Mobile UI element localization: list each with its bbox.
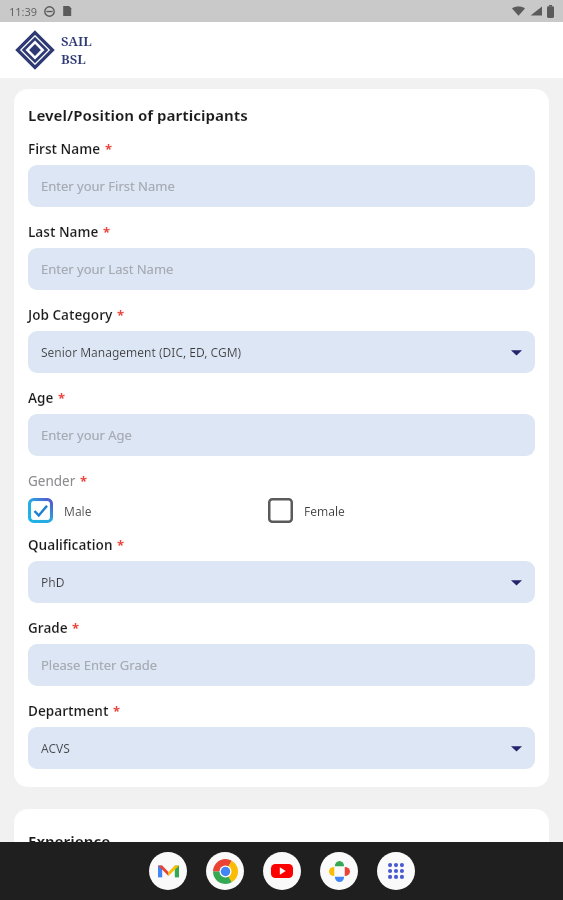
staticText: Gender — [28, 472, 76, 490]
staticText: PhD — [41, 574, 65, 590]
staticText: * — [103, 223, 111, 241]
staticText: Department — [28, 702, 109, 720]
button[interactable]: Please Enter Grade — [28, 644, 535, 686]
staticText: Please Enter Grade — [41, 656, 158, 674]
button[interactable]: YouTube — [263, 852, 301, 890]
staticText: * — [117, 536, 125, 554]
button[interactable]: Male selected — [28, 498, 100, 523]
button[interactable]: Senior Management (DIC, ED, CGM) — [28, 331, 535, 373]
staticText: ACVS — [41, 740, 70, 756]
staticText: * — [80, 472, 88, 490]
staticText: Level/Position of participants — [28, 105, 248, 125]
button[interactable]: ACVS — [28, 727, 535, 769]
staticText: * — [105, 140, 113, 158]
staticText: Female — [304, 503, 345, 519]
staticText: BSL — [61, 50, 86, 68]
staticText: * — [113, 702, 121, 720]
button[interactable]: Photos — [320, 852, 358, 890]
staticText: Age — [28, 389, 54, 407]
staticText: Enter your Last Name — [41, 260, 174, 278]
button[interactable]: Enter your First Name — [28, 165, 535, 207]
staticText: Experience — [28, 831, 111, 851]
button[interactable]: Enter your Age — [28, 414, 535, 456]
staticText: Enter your Age — [41, 426, 132, 444]
staticText: Senior Management (DIC, ED, CGM) — [41, 344, 242, 360]
staticText: * — [72, 619, 80, 637]
staticText: Grade — [28, 619, 68, 637]
staticText: Male — [64, 503, 92, 519]
staticText: * — [117, 306, 125, 324]
staticText: Job Category — [28, 306, 113, 324]
button[interactable]: Female not selected — [268, 498, 353, 523]
staticText: First Name — [28, 140, 101, 158]
button[interactable]: Enter your Last Name — [28, 248, 535, 290]
button[interactable]: Gmail — [149, 852, 187, 890]
staticText: SAIL — [61, 32, 92, 50]
staticText: * — [58, 389, 66, 407]
staticText: Enter your First Name — [41, 177, 175, 195]
other: Female not selected — [268, 498, 293, 523]
button[interactable]: All apps — [377, 852, 415, 890]
other: Male selected — [28, 498, 53, 523]
button[interactable]: Chrome — [206, 852, 244, 890]
staticText: 11:39 — [9, 4, 38, 19]
button[interactable]: PhD — [28, 561, 535, 603]
staticText: Last Name — [28, 223, 99, 241]
staticText: Qualification — [28, 536, 113, 554]
